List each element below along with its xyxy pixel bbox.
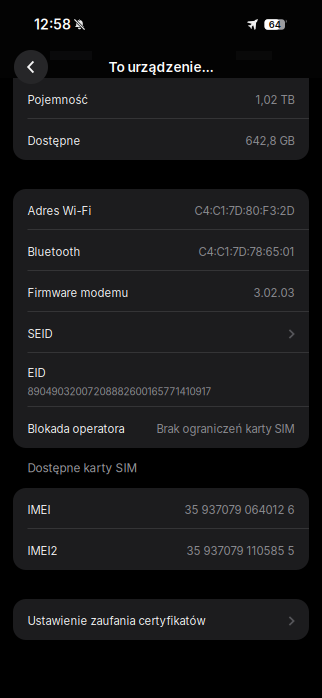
staticText: 1,02 TB [255, 93, 294, 107]
staticText: Firmware modemu [27, 286, 128, 300]
staticText: Bluetooth [27, 245, 80, 259]
staticText: 89049032007208882600165771410917 [27, 386, 211, 398]
staticText: Dostępne [27, 134, 80, 148]
staticText: C4:C1:7D:80:F3:2D [194, 204, 294, 218]
staticText: 12:58 [34, 16, 71, 33]
staticText: EID [27, 366, 45, 380]
staticText: 642,8 GB [245, 134, 294, 148]
button[interactable]: Back [14, 50, 48, 84]
staticText: 64 [269, 19, 281, 30]
staticText: Pojemność [27, 93, 87, 107]
staticText: 35 937079 064012 6 [184, 503, 294, 517]
staticText: 3.02.03 [253, 286, 294, 300]
staticText: Adres Wi-Fi [27, 204, 91, 218]
staticText: SEID [27, 327, 52, 341]
button[interactable]: Ustawienie zaufania certyfikatów [13, 599, 309, 640]
staticText: 35 937079 110585 5 [186, 544, 294, 558]
staticText: IMEI2 [27, 544, 57, 558]
staticText: Ustawienie zaufania certyfikatów [27, 614, 205, 628]
button[interactable]: SEID [13, 312, 309, 353]
staticText: Blokada operatora [27, 422, 124, 436]
staticText: Brak ograniczeń karty SIM [156, 422, 294, 436]
staticText: To urządzenie... [108, 59, 213, 75]
staticText: C4:C1:7D:78:65:01 [198, 245, 294, 259]
staticText: IMEI [27, 503, 50, 517]
staticText: Dostępne karty SIM [27, 461, 137, 475]
